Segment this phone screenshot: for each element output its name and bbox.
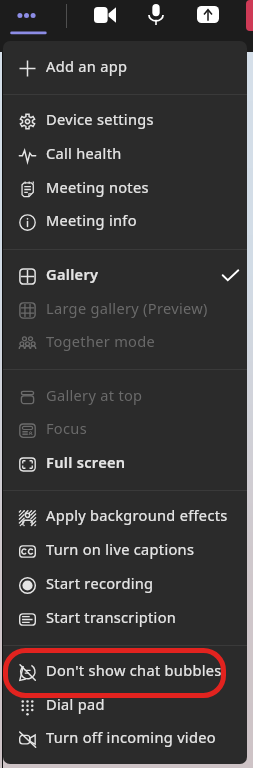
staticText: Turn off incoming video	[46, 727, 216, 747]
button[interactable]: Meeting notes	[3, 172, 247, 206]
staticText: Don't show chat bubbles	[46, 660, 222, 680]
button[interactable]: Together mode	[3, 326, 247, 360]
staticText: Start recording	[46, 573, 154, 593]
staticText: Turn on live captions	[46, 539, 195, 559]
staticText: Meeting info	[46, 210, 137, 230]
button[interactable]: Microphone	[137, 0, 174, 29]
button[interactable]: Gallery	[3, 259, 247, 293]
button[interactable]: Leave call	[246, 0, 253, 31]
button[interactable]: Device settings	[3, 104, 247, 138]
button[interactable]: Start transcription	[3, 602, 247, 636]
staticText: Gallery	[46, 264, 99, 284]
staticText: Meeting notes	[46, 177, 149, 197]
staticText: Dial pad	[46, 694, 105, 714]
button[interactable]: Apply background effects	[3, 500, 247, 534]
staticText: Call health	[46, 143, 122, 163]
button[interactable]: Call health	[3, 138, 247, 172]
button[interactable]: Large gallery (Preview)	[3, 293, 247, 327]
button[interactable]: Meeting info	[3, 205, 247, 239]
staticText: Device settings	[46, 109, 154, 129]
staticText: Full screen	[46, 452, 126, 472]
button[interactable]: Start recording	[3, 568, 247, 602]
button[interactable]: Don't show chat bubbles	[3, 655, 247, 689]
button[interactable]: Focus	[3, 413, 247, 447]
staticText: Focus	[46, 418, 87, 438]
button[interactable]: Turn on live captions	[3, 534, 247, 568]
button[interactable]: Gallery at top	[3, 380, 247, 414]
staticText: Gallery at top	[46, 385, 143, 405]
button[interactable]: Dial pad	[3, 689, 247, 723]
staticText: Start transcription	[46, 607, 177, 627]
staticText: Together mode	[46, 331, 156, 351]
staticText: Large gallery (Preview)	[46, 298, 208, 318]
staticText: Add an app	[46, 56, 128, 76]
staticText: Apply background effects	[46, 505, 228, 525]
button[interactable]: Full screen	[3, 447, 247, 481]
button[interactable]: Turn off incoming video	[3, 722, 247, 756]
button[interactable]: Add an app	[3, 51, 247, 85]
button[interactable]: Camera	[84, 0, 126, 29]
button[interactable]: Share screen	[197, 6, 219, 23]
button[interactable]: More options	[8, 2, 48, 36]
